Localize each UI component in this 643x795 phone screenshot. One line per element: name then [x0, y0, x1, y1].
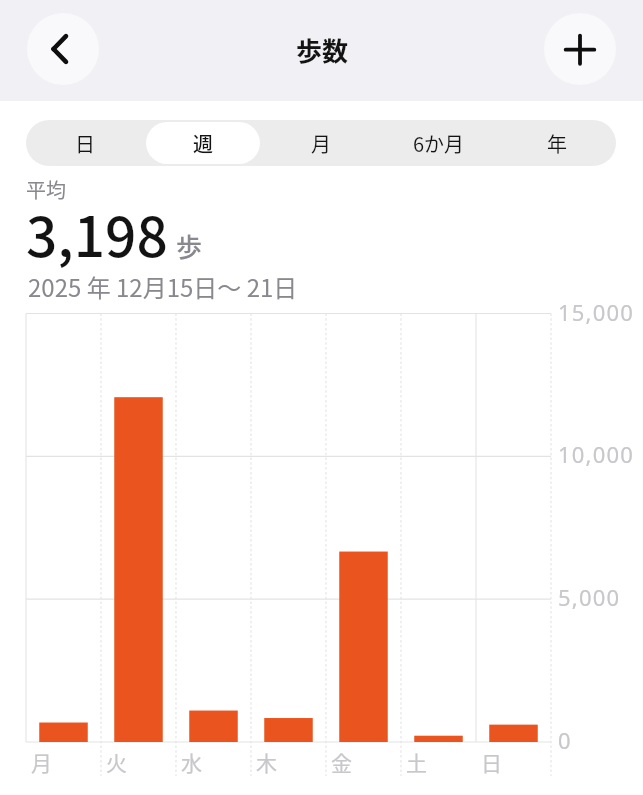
- staticText: 土: [406, 747, 427, 777]
- staticText: 木: [256, 747, 277, 777]
- staticText: 週: [193, 129, 213, 158]
- staticText: 15,000: [558, 297, 635, 327]
- staticText: 平均: [26, 175, 66, 204]
- staticText: 日: [481, 747, 502, 777]
- staticText: 日: [75, 129, 95, 158]
- button[interactable]: 6か月: [382, 122, 496, 164]
- staticText: 10,000: [558, 439, 635, 469]
- staticText: 月: [31, 747, 52, 777]
- button[interactable]: Add: [544, 13, 616, 85]
- button[interactable]: Back: [27, 13, 99, 85]
- staticText: 3,198: [26, 193, 168, 273]
- staticText: 6か月: [413, 129, 465, 158]
- staticText: 火: [106, 747, 127, 777]
- staticText: 歩: [176, 227, 203, 265]
- staticText: 水: [181, 747, 202, 777]
- staticText: 5,000: [558, 582, 621, 612]
- staticText: 0: [558, 725, 572, 755]
- button[interactable]: 年: [500, 122, 614, 164]
- staticText: 歩数: [296, 31, 349, 69]
- button[interactable]: 月: [264, 122, 378, 164]
- staticText: 月: [311, 129, 331, 158]
- staticText: 金: [331, 747, 352, 777]
- staticText: 2025 年 12月15日〜 21日: [28, 269, 298, 304]
- staticText: 年: [547, 129, 567, 158]
- button[interactable]: 日: [28, 122, 142, 164]
- button[interactable]: 週: [146, 122, 260, 164]
